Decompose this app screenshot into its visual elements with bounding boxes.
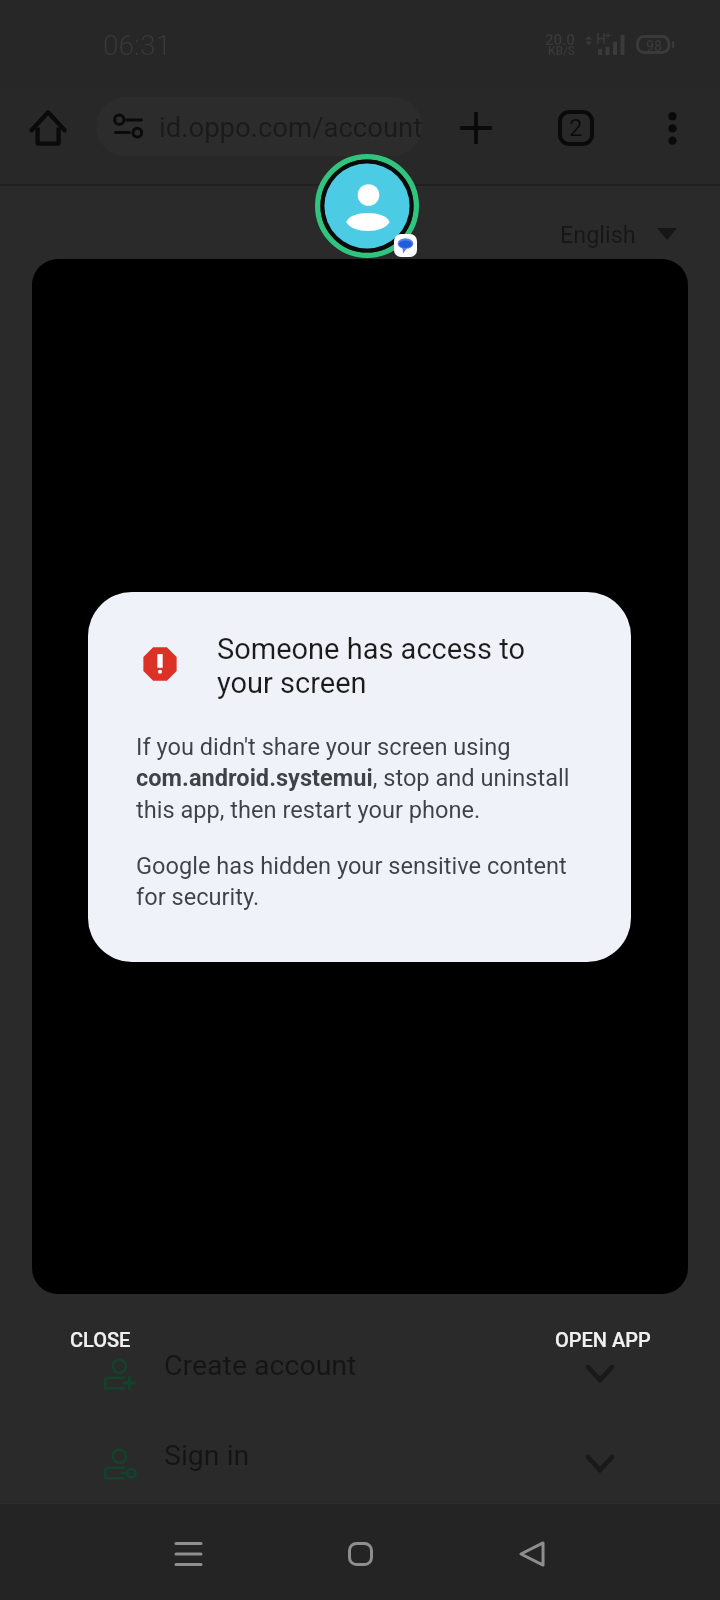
button[interactable]: id.oppo.com/account [96,97,422,156]
button[interactable]: English [548,208,677,260]
staticText: If you didn't share your screen using co… [136,733,588,824]
button[interactable]: CLOSE [52,1316,148,1362]
staticText: Google has hidden your sensitive content… [136,852,588,911]
button[interactable]: Back [484,1508,580,1600]
button[interactable]: OPEN APP [537,1316,669,1362]
button[interactable]: Tabs [542,94,610,162]
staticText: 98 [646,38,662,54]
staticText: Create account [164,1349,357,1382]
button[interactable]: Home [8,88,88,164]
staticText: OPEN APP [555,1328,651,1351]
button[interactable]: More options [638,94,706,162]
button[interactable]: Create account [0,1329,720,1418]
staticText: Sign in [164,1439,250,1472]
staticText: Someone has access to your screen [217,632,525,700]
staticText: 20.0 [545,31,575,49]
staticText: 06:31 [103,29,172,62]
staticText: CLOSE [70,1328,131,1351]
button[interactable]: Home [312,1508,408,1600]
staticText: id.oppo.com/account [159,111,422,143]
staticText: + [605,29,612,42]
staticText: English [560,221,636,248]
staticText: KB/S [548,44,576,58]
button[interactable]: Recent apps [140,1508,236,1600]
staticText: H [596,31,606,47]
staticText: 2 [569,114,583,142]
button[interactable]: New tab [442,94,510,162]
button[interactable]: Account [315,154,419,258]
